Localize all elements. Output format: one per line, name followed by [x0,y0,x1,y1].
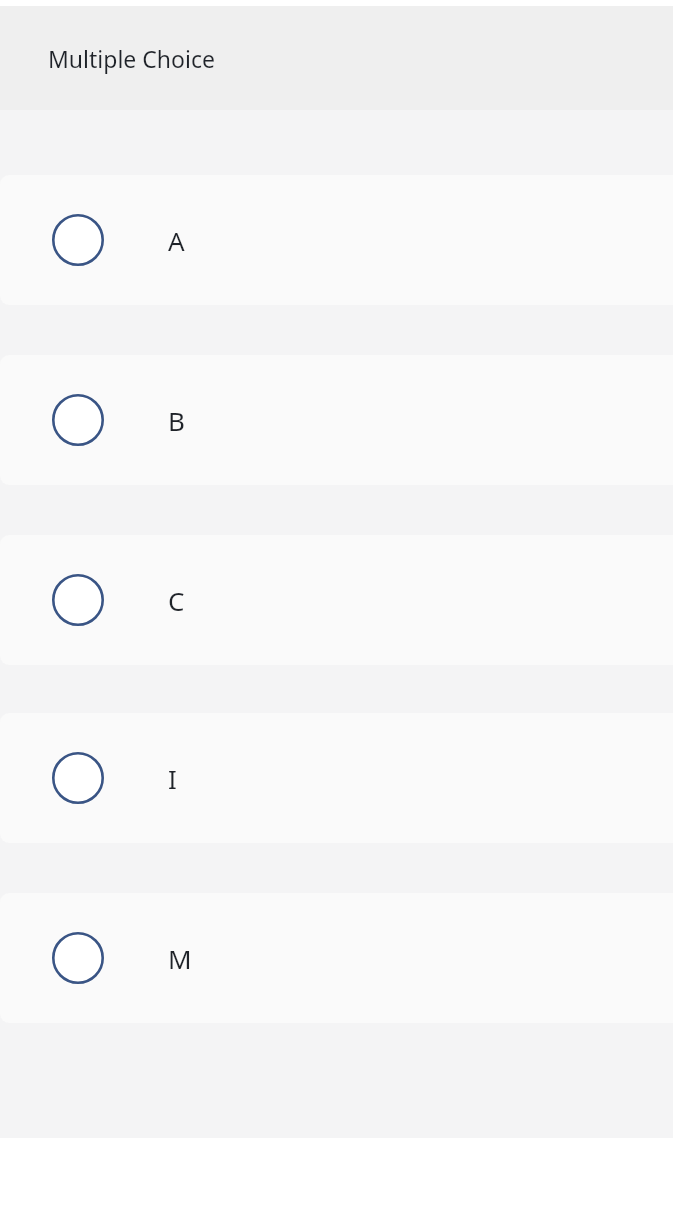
staticText: C [168,583,185,618]
staticText: M [168,941,192,976]
button[interactable]: B [0,355,673,485]
staticText: I [168,761,177,796]
staticText: B [168,403,185,438]
button[interactable]: C [0,535,673,665]
staticText: Multiple Choice [48,43,215,74]
button[interactable]: I [0,713,673,843]
button[interactable]: A [0,175,673,305]
button[interactable]: M [0,893,673,1023]
staticText: A [168,223,185,258]
